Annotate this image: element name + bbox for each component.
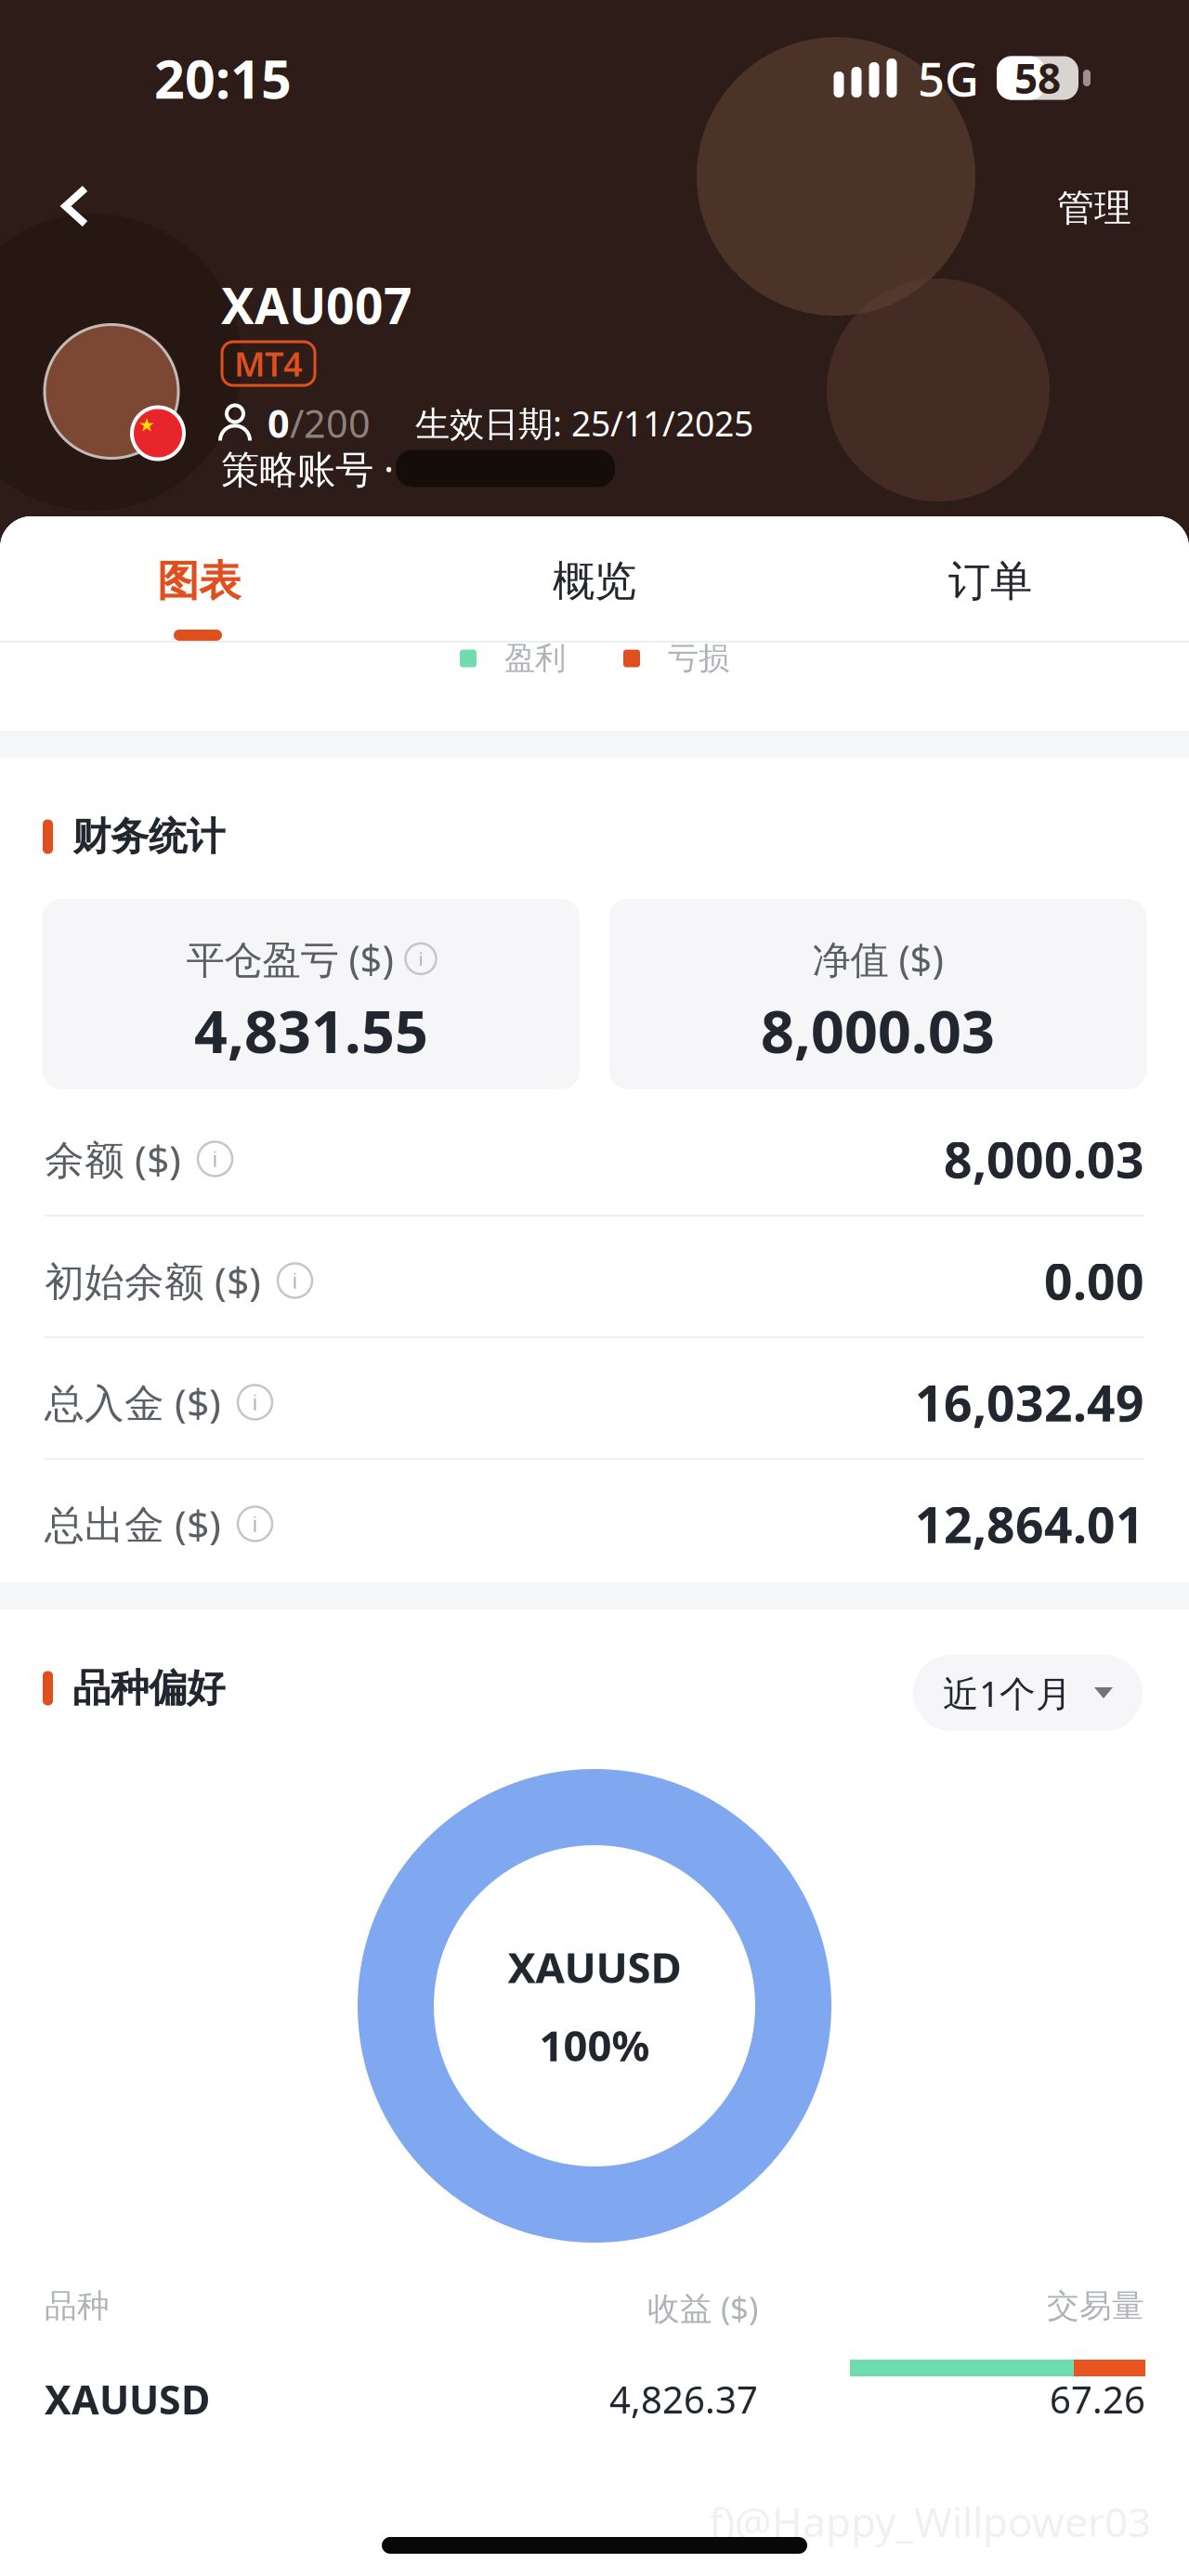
button[interactable]: 概览 — [397, 516, 792, 643]
staticText: 初始余额 ($) — [45, 1254, 261, 1307]
staticText: i — [418, 946, 423, 971]
staticText: 总出金 ($) — [45, 1498, 221, 1550]
staticText: 策略账号 · — [221, 443, 394, 494]
staticText: 58 — [1014, 51, 1061, 105]
staticText: 图表 — [157, 555, 241, 607]
staticText: 0 — [268, 397, 290, 448]
staticText: i — [292, 1267, 298, 1295]
staticText: 100% — [539, 2017, 650, 2073]
staticText: 5G — [918, 47, 979, 109]
staticText: 4,831.55 — [194, 992, 428, 1069]
staticText: 概览 — [553, 555, 636, 607]
staticText: 品种 — [45, 2286, 110, 2326]
staticText: i — [212, 1145, 218, 1173]
staticText: 8,000.03 — [761, 992, 995, 1069]
staticText: 总入金 ($) — [45, 1376, 221, 1429]
button[interactable]: 余额 ($) — [0, 1095, 1189, 1215]
staticText: i — [252, 1510, 258, 1538]
button[interactable]: 管理 — [1039, 173, 1150, 243]
staticText: 4,826.37 — [609, 2374, 758, 2424]
staticText: 净值 ($) — [812, 933, 943, 984]
button[interactable]: 总出金 ($) — [0, 1460, 1189, 1580]
staticText: MT4 — [234, 341, 303, 386]
staticText: 8,000.03 — [944, 1126, 1144, 1192]
staticText: 交易量 — [1047, 2286, 1144, 2326]
staticText: 16,032.49 — [915, 1369, 1144, 1435]
staticText: 品种偏好 — [72, 1665, 225, 1712]
button[interactable]: 近1个月 — [913, 1655, 1143, 1731]
staticText: 0.00 — [1044, 1248, 1144, 1313]
staticText: i — [252, 1388, 258, 1416]
staticText: 近1个月 — [943, 1669, 1072, 1717]
staticText: 平仓盈亏 ($) — [186, 933, 393, 984]
button[interactable]: 订单 — [792, 516, 1188, 643]
staticText: XAUUSD — [508, 1939, 681, 1995]
staticText: ƒ)@Happy_Willpower03 — [706, 2494, 1151, 2549]
button[interactable]: 总入金 ($) — [0, 1338, 1189, 1458]
staticText: 67.26 — [1050, 2374, 1145, 2424]
button[interactable]: 初始余额 ($) — [0, 1216, 1189, 1336]
staticText: 订单 — [948, 555, 1032, 607]
staticText: 收益 ($) — [647, 2286, 758, 2329]
staticText: ★ — [138, 414, 155, 435]
staticText: 管理 — [1057, 185, 1131, 231]
staticText: XAU007 — [221, 272, 412, 338]
staticText: 12,864.01 — [915, 1491, 1144, 1557]
staticText: 生效日期: 25/11/2025 — [415, 400, 753, 446]
button[interactable]: 图表 — [1, 516, 397, 643]
staticText: /200 — [290, 397, 371, 448]
staticText: 财务统计 — [72, 813, 225, 860]
staticText: XAUUSD — [45, 2373, 210, 2425]
staticText: 盈利 — [504, 639, 566, 677]
staticText: 余额 ($) — [45, 1133, 181, 1185]
staticText: 20:15 — [154, 43, 292, 113]
button[interactable]: Back — [33, 164, 117, 248]
staticText: 亏损 — [668, 639, 729, 677]
